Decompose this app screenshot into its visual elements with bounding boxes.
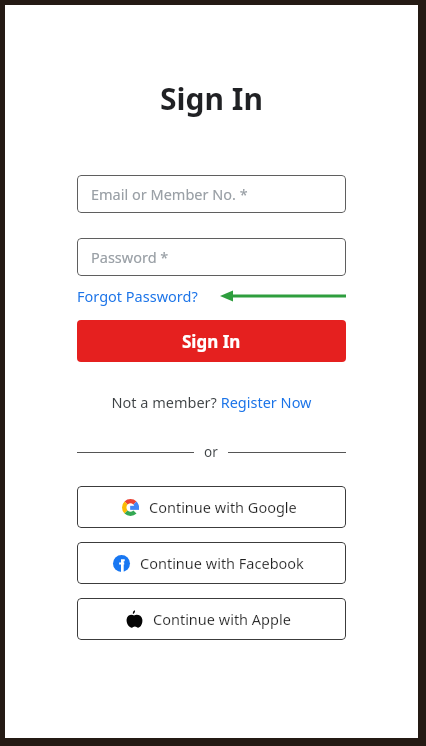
button[interactable]: Password * [77, 238, 346, 276]
button[interactable]: Email or Member No. * [77, 175, 346, 213]
button[interactable]: Forgot Password? [77, 286, 198, 306]
button[interactable]: Continue with Facebook [77, 542, 346, 584]
staticText: Continue with Apple [153, 609, 291, 629]
button[interactable]: Continue with Apple [77, 598, 346, 640]
staticText: Not a member? Register Now [111, 392, 312, 412]
staticText: Continue with Google [149, 497, 297, 517]
staticText: Email or Member No. * [91, 184, 248, 204]
staticText: Forgot Password? [77, 286, 198, 306]
staticText: or [204, 443, 218, 461]
button[interactable]: Continue with Google [77, 486, 346, 528]
staticText: Sign In [160, 78, 263, 119]
staticText: Password * [91, 247, 169, 267]
button[interactable]: Sign In [77, 320, 346, 362]
button[interactable]: Not a member? Register Now [111, 392, 312, 412]
staticText: Continue with Facebook [140, 553, 304, 573]
staticText: Sign In [182, 330, 241, 353]
